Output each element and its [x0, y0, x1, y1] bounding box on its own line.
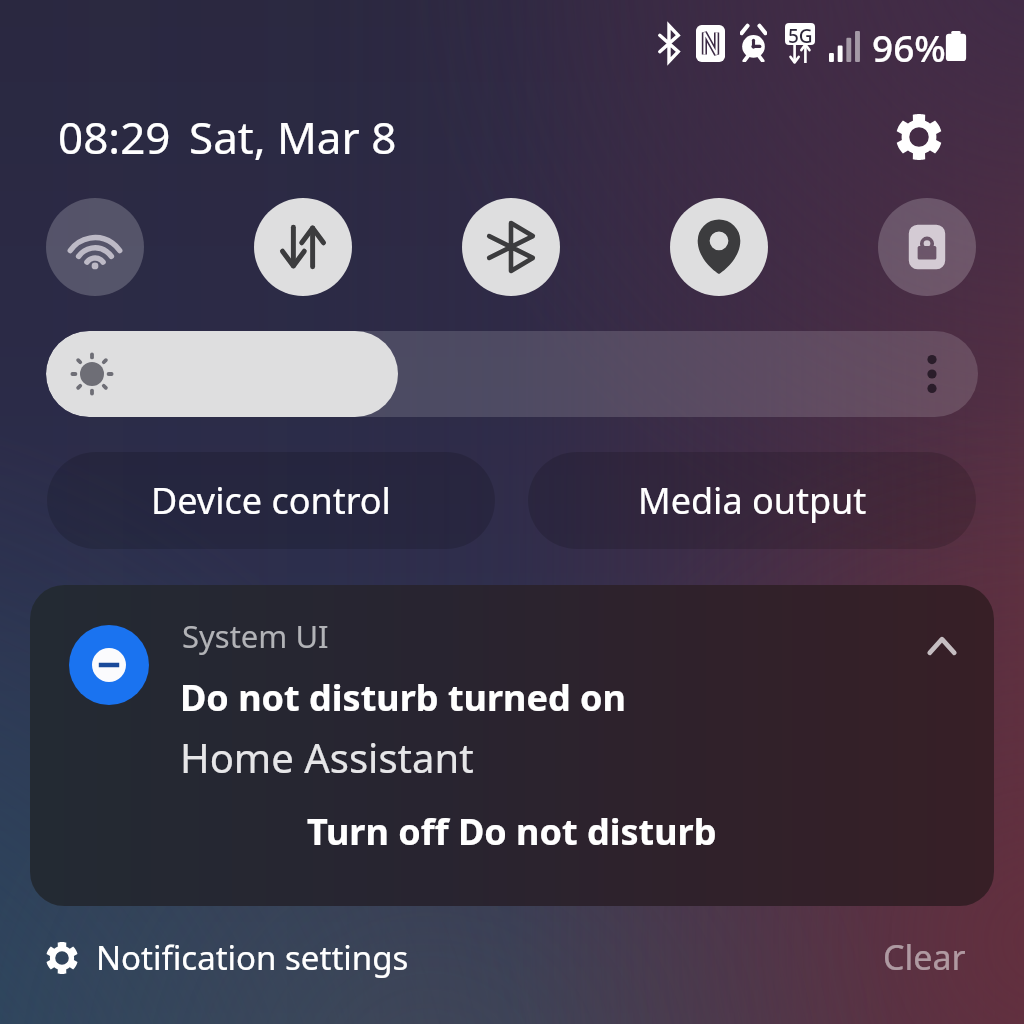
staticText: System UI	[182, 615, 329, 657]
button[interactable]: Collapse notification	[917, 621, 967, 671]
button[interactable]: Location	[670, 198, 768, 296]
button[interactable]: Device control	[47, 452, 495, 549]
button[interactable]: More brightness options	[912, 354, 952, 394]
staticText: Do not disturb turned on	[180, 673, 626, 722]
staticText: 96%	[872, 22, 946, 72]
button[interactable]: Media output	[528, 452, 976, 549]
staticText: 5G	[788, 23, 813, 45]
button[interactable]: Clear	[883, 934, 966, 980]
button[interactable]: Mobile data	[254, 198, 352, 296]
button[interactable]: Brightness	[46, 331, 978, 417]
staticText: Media output	[638, 476, 867, 525]
staticText: Home Assistant	[180, 730, 474, 784]
staticText: Turn off Do not disturb	[307, 807, 717, 856]
button[interactable]: System UI	[30, 585, 994, 906]
staticText: Device control	[151, 476, 391, 525]
button[interactable]: 08:29	[58, 107, 397, 167]
button[interactable]: Turn off Do not disturb	[307, 807, 717, 856]
staticText: Clear	[883, 934, 966, 980]
staticText: 08:29	[58, 107, 171, 167]
staticText: Notification settings	[96, 935, 409, 980]
staticText: Sat, Mar 8	[189, 107, 397, 167]
button[interactable]: Screen lock	[878, 198, 976, 296]
button[interactable]: Notification settings	[46, 935, 409, 980]
button[interactable]: Bluetooth	[462, 198, 560, 296]
button[interactable]: Settings	[892, 110, 946, 164]
button[interactable]: Wi-Fi	[46, 198, 144, 296]
